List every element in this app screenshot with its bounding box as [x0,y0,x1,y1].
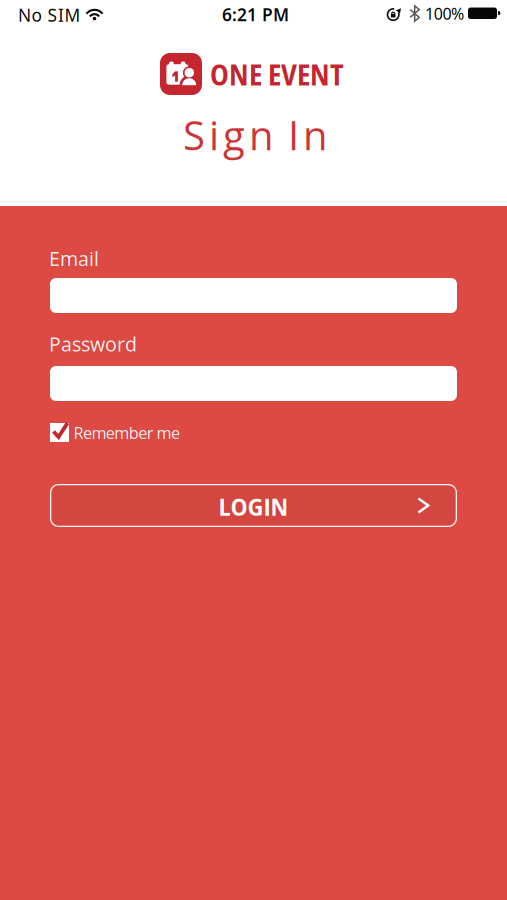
staticText: Email [49,245,99,272]
button[interactable]: Password [50,366,457,401]
staticText: 100% [425,3,464,24]
staticText: Password [49,330,137,357]
button[interactable]: Login [50,484,457,527]
staticText: LOGIN [218,490,288,523]
staticText: No SIM [18,3,80,26]
staticText: Remember me [73,421,180,444]
staticText: ONE EVENT [210,55,344,94]
staticText: S i g n I n [183,107,328,162]
staticText: 6:21 PM [222,3,289,26]
button[interactable]: Email [50,278,457,313]
button[interactable]: Remember me [50,421,180,443]
